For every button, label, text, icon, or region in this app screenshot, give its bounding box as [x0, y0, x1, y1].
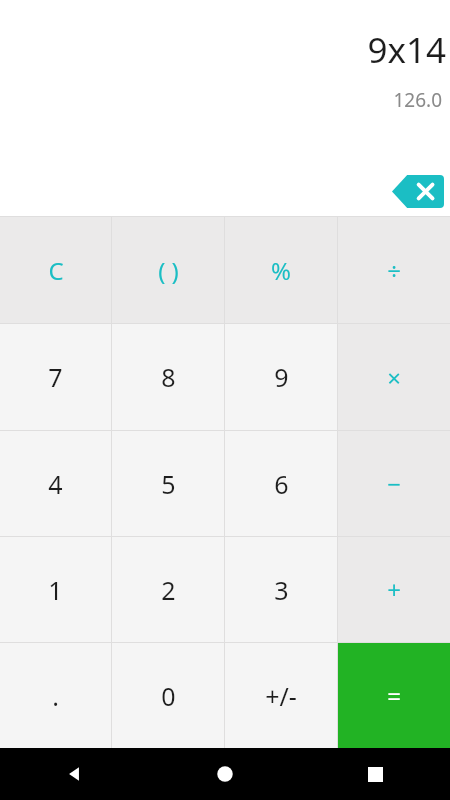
button[interactable]: 6	[225, 431, 337, 536]
button[interactable]: C	[0, 217, 111, 323]
button[interactable]: ×	[338, 324, 450, 430]
staticText: =	[387, 679, 401, 712]
staticText: ÷	[387, 254, 401, 287]
button[interactable]: 5	[112, 431, 224, 536]
button[interactable]: Back	[0, 748, 150, 800]
staticText: ( )	[158, 254, 179, 287]
button[interactable]: Recent apps	[300, 748, 450, 800]
staticText: 126.0	[393, 87, 442, 113]
staticText: 6	[274, 467, 289, 501]
button[interactable]: =	[338, 643, 450, 748]
button[interactable]: 3	[225, 537, 337, 642]
button[interactable]: Backspace	[392, 175, 444, 208]
button[interactable]: 4	[0, 431, 111, 536]
staticText: 9x14	[367, 26, 446, 74]
staticText: %	[271, 254, 291, 287]
button[interactable]: 9	[225, 324, 337, 430]
button[interactable]: 7	[0, 324, 111, 430]
staticText: 9	[274, 360, 289, 394]
button[interactable]: ( )	[112, 217, 224, 323]
staticText: 7	[48, 360, 63, 394]
staticText: ×	[387, 361, 401, 394]
button[interactable]: 1	[0, 537, 111, 642]
button[interactable]: −	[338, 431, 450, 536]
staticText: 0	[161, 679, 176, 713]
button[interactable]: +	[338, 537, 450, 642]
button[interactable]: %	[225, 217, 337, 323]
staticText: C	[48, 254, 64, 287]
button[interactable]: 2	[112, 537, 224, 642]
staticText: 5	[161, 467, 176, 501]
staticText: 4	[48, 467, 63, 501]
button[interactable]: +/-	[225, 643, 337, 748]
button[interactable]: 0	[112, 643, 224, 748]
staticText: +/-	[265, 679, 297, 713]
staticText: .	[52, 679, 59, 713]
button[interactable]: Home	[150, 748, 300, 800]
staticText: −	[387, 467, 401, 500]
staticText: 3	[274, 573, 289, 607]
staticText: 1	[48, 573, 63, 607]
button[interactable]: .	[0, 643, 111, 748]
button[interactable]: 8	[112, 324, 224, 430]
staticText: +	[387, 573, 401, 606]
staticText: 2	[161, 573, 176, 607]
button[interactable]: ÷	[338, 217, 450, 323]
staticText: 8	[161, 360, 176, 394]
